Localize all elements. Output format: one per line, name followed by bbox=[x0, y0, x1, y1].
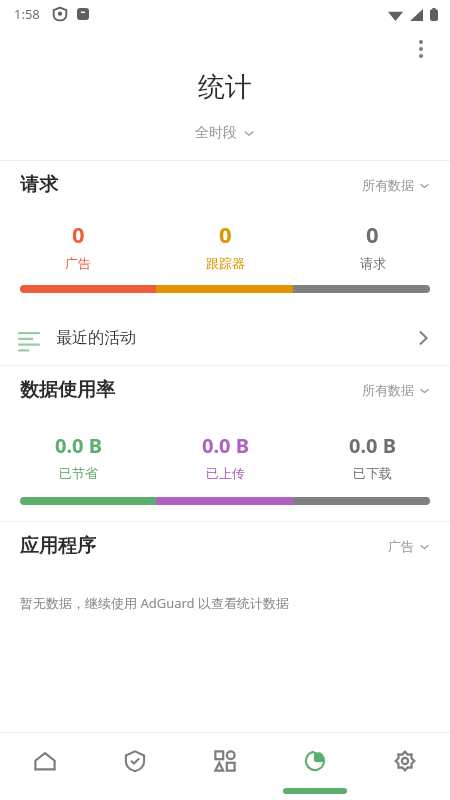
staticText: 广告 bbox=[388, 538, 414, 554]
button[interactable]: 所有数据 bbox=[362, 171, 430, 199]
button[interactable]: 全时段 bbox=[187, 122, 263, 144]
staticText: 所有数据 bbox=[362, 382, 414, 398]
staticText: 0 bbox=[366, 219, 379, 249]
staticText: 0.0 B bbox=[202, 432, 249, 459]
staticText: 0 bbox=[72, 219, 85, 249]
button[interactable]: Apps bbox=[180, 733, 270, 788]
staticText: 1:58 bbox=[14, 5, 40, 23]
staticText: 所有数据 bbox=[362, 177, 414, 193]
button[interactable]: 广告 bbox=[388, 532, 430, 560]
staticText: 应用程序 bbox=[20, 534, 96, 558]
staticText: 最近的活动 bbox=[56, 328, 136, 348]
staticText: 已下载 bbox=[353, 465, 392, 481]
staticText: 0.0 B bbox=[349, 432, 396, 459]
button[interactable]: Settings bbox=[360, 733, 450, 788]
staticText: 统计 bbox=[198, 70, 252, 104]
staticText: 跟踪器 bbox=[206, 255, 245, 271]
button[interactable]: Protection bbox=[90, 733, 180, 788]
button[interactable]: More options bbox=[400, 28, 442, 70]
staticText: 暂无数据，继续使用 AdGuard 以查看统计数据 bbox=[20, 594, 289, 612]
staticText: 广告 bbox=[65, 255, 91, 271]
staticText: 已上传 bbox=[206, 465, 245, 481]
button[interactable]: 所有数据 bbox=[362, 376, 430, 404]
button[interactable]: Statistics bbox=[270, 733, 360, 788]
staticText: 0.0 B bbox=[55, 432, 102, 459]
staticText: 请求 bbox=[20, 173, 58, 197]
staticText: 全时段 bbox=[195, 124, 237, 142]
staticText: 请求 bbox=[360, 255, 386, 271]
staticText: 0 bbox=[219, 219, 232, 249]
staticText: 数据使用率 bbox=[20, 378, 115, 402]
button[interactable]: 最近的活动 bbox=[0, 311, 450, 365]
button[interactable]: Home bbox=[0, 733, 90, 788]
staticText: 已节省 bbox=[59, 465, 98, 481]
